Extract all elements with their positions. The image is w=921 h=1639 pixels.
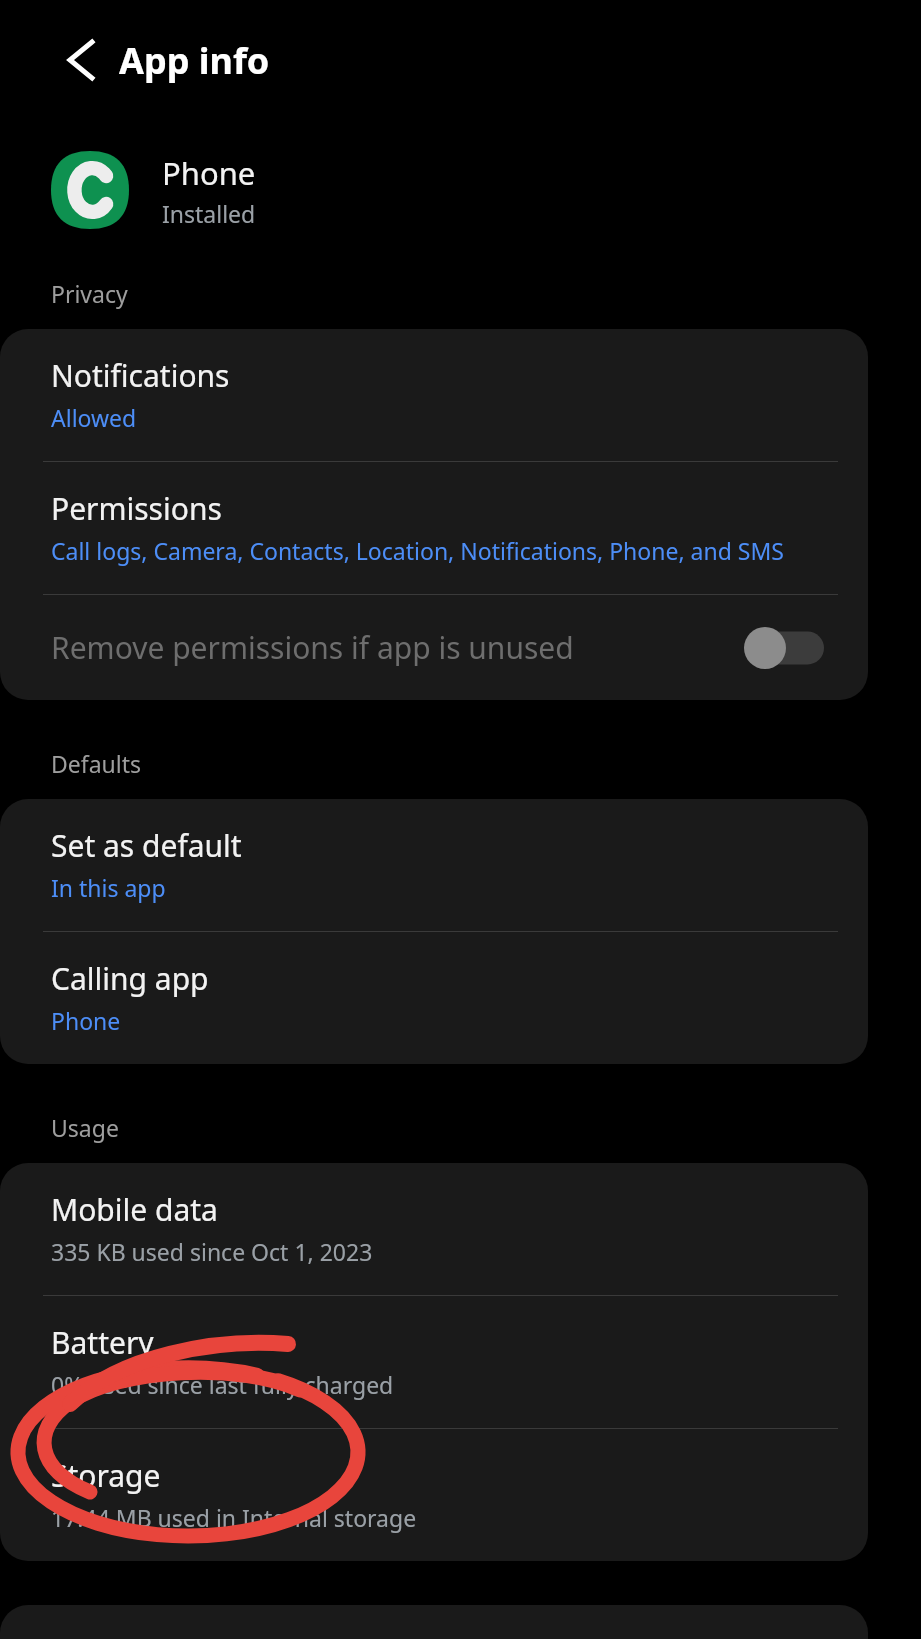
staticText: Permissions xyxy=(51,488,222,529)
staticText: 0% used since last fully charged xyxy=(51,1369,394,1400)
staticText: Set as default xyxy=(51,825,242,866)
button[interactable]: Storage xyxy=(0,1429,868,1561)
button[interactable]: Remove permissions if app is unused xyxy=(0,595,868,700)
staticText: Remove permissions if app is unused xyxy=(51,627,742,668)
staticText: 17.44 MB used in Internal storage xyxy=(51,1502,417,1533)
staticText: Allowed xyxy=(51,402,137,433)
staticText: Usage xyxy=(51,1112,119,1143)
button[interactable]: Permissions xyxy=(0,462,868,594)
staticText: Defaults xyxy=(51,748,142,779)
staticText: Call logs, Camera, Contacts, Location, N… xyxy=(51,535,784,566)
button[interactable]: Back xyxy=(30,30,100,90)
staticText: Phone xyxy=(162,152,256,194)
staticText: Notifications xyxy=(51,355,230,396)
staticText: In this app xyxy=(51,872,166,903)
button[interactable]: Calling app xyxy=(0,932,868,1064)
staticText: Battery xyxy=(51,1322,154,1363)
staticText: Phone xyxy=(51,1005,121,1036)
button[interactable]: Notifications xyxy=(0,329,868,461)
button[interactable]: Phone xyxy=(0,120,921,260)
staticText: Calling app xyxy=(51,958,209,999)
staticText: Storage xyxy=(51,1455,161,1496)
button[interactable]: Set as default xyxy=(0,799,868,931)
button[interactable]: Battery xyxy=(0,1296,868,1428)
staticText: App info xyxy=(119,36,270,85)
button[interactable]: Mobile data xyxy=(0,1163,868,1295)
staticText: Privacy xyxy=(51,278,128,309)
staticText: 335 KB used since Oct 1, 2023 xyxy=(51,1236,373,1267)
staticText: Installed xyxy=(162,198,256,229)
staticText: Mobile data xyxy=(51,1189,218,1230)
